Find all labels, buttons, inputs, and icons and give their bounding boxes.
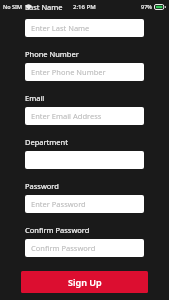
staticText: Sign Up — [68, 276, 102, 288]
staticText: Confirm Password — [25, 225, 90, 235]
button[interactable]: Sign Up — [21, 271, 148, 293]
staticText: Enter Phone Number — [31, 67, 106, 77]
staticText: Email — [25, 93, 45, 103]
staticText: Enter Last Name — [31, 23, 90, 33]
staticText: No SIM — [3, 3, 23, 10]
staticText: Department — [25, 137, 68, 147]
button[interactable]: Password — [25, 195, 144, 213]
staticText: Password — [25, 181, 59, 191]
staticText: 2:16 PM — [73, 3, 96, 11]
staticText: Last Name — [25, 2, 63, 12]
staticText: Enter Password — [31, 199, 86, 209]
button[interactable]: Phone Number — [25, 63, 144, 81]
staticText: Confirm Password — [31, 243, 96, 253]
button[interactable]: Email — [25, 107, 144, 125]
staticText: 97% — [141, 3, 152, 10]
button[interactable]: Last Name — [25, 19, 144, 37]
button[interactable]: Confirm Password — [25, 239, 144, 257]
staticText: Phone Number — [25, 49, 79, 59]
button[interactable]: Department — [25, 151, 144, 169]
staticText: Enter Email Address — [31, 111, 102, 121]
